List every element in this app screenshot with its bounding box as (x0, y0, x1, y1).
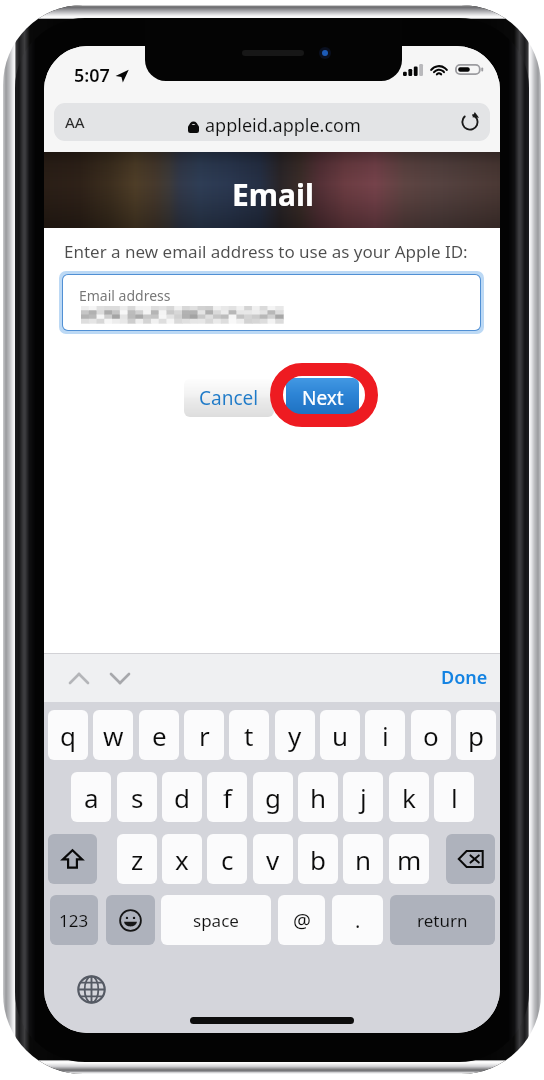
button[interactable]: b (298, 834, 338, 884)
button[interactable]: t (229, 710, 269, 760)
staticText: return (417, 909, 468, 932)
staticText: a (84, 780, 99, 815)
staticText: s (131, 780, 144, 815)
staticText: . (355, 907, 361, 934)
staticText: appleid.apple.com (205, 113, 361, 138)
button[interactable]: k (389, 772, 429, 822)
staticText: p (468, 718, 484, 753)
button[interactable]: n (343, 834, 383, 884)
staticText: c (221, 842, 234, 877)
button[interactable]: q (48, 710, 88, 760)
button[interactable]: AA (54, 103, 490, 141)
staticText: t (244, 718, 254, 753)
button[interactable]: . (332, 895, 383, 945)
staticText: v (266, 842, 280, 877)
staticText: f (223, 780, 232, 815)
staticText: Cancel (199, 385, 259, 411)
staticText: i (382, 718, 389, 753)
staticText: l (451, 780, 458, 815)
button[interactable]: p (456, 710, 496, 760)
button[interactable]: r (184, 710, 224, 760)
staticText: o (423, 718, 439, 753)
button[interactable]: Previous field (64, 663, 94, 693)
button[interactable]: y (275, 710, 315, 760)
button[interactable]: h (298, 772, 338, 822)
staticText: x (175, 842, 189, 877)
staticText: Done (441, 665, 488, 690)
button[interactable]: Reload page (458, 110, 482, 134)
button[interactable]: Email address (63, 275, 480, 330)
staticText: Email (232, 174, 314, 215)
button[interactable]: space (161, 895, 271, 945)
staticText: 5:07 (74, 63, 110, 88)
button[interactable]: l (434, 772, 474, 822)
button[interactable]: w (93, 710, 133, 760)
button[interactable]: Done (441, 665, 488, 690)
button[interactable]: x (162, 834, 202, 884)
button[interactable]: Delete (446, 834, 495, 884)
staticText: n (355, 842, 372, 877)
staticText: 123 (59, 909, 89, 932)
staticText: u (332, 718, 349, 753)
staticText: w (103, 718, 124, 753)
staticText: Email address (79, 286, 171, 305)
staticText: b (310, 842, 326, 877)
button[interactable]: Cancel (184, 379, 274, 417)
button[interactable]: m (389, 834, 429, 884)
button[interactable]: z (117, 834, 157, 884)
button[interactable]: g (253, 772, 293, 822)
staticText: z (131, 842, 144, 877)
staticText: r (199, 718, 210, 753)
staticText: y (288, 718, 302, 753)
button[interactable]: return (390, 895, 495, 945)
staticText: g (265, 780, 281, 815)
staticText: @ (293, 907, 311, 934)
button[interactable]: Next (286, 378, 359, 417)
button[interactable]: a (71, 772, 111, 822)
button[interactable]: c (207, 834, 247, 884)
button[interactable]: Emoji keyboard (106, 895, 155, 945)
staticText: Enter a new email address to use as your… (64, 240, 468, 263)
staticText: j (360, 780, 367, 815)
button[interactable]: i (365, 710, 405, 760)
button[interactable]: u (320, 710, 360, 760)
staticText: h (310, 780, 327, 815)
button[interactable]: e (139, 710, 179, 760)
button[interactable]: f (207, 772, 247, 822)
button[interactable]: Shift (48, 834, 97, 884)
button[interactable]: j (343, 772, 383, 822)
staticText: m (397, 842, 422, 877)
button[interactable]: s (117, 772, 157, 822)
button[interactable]: 123 (50, 895, 98, 945)
button[interactable]: @ (278, 895, 325, 945)
staticText: q (60, 718, 76, 753)
button[interactable]: Change keyboard (74, 972, 108, 1006)
staticText: AA (65, 112, 85, 132)
button[interactable]: d (162, 772, 202, 822)
button[interactable]: Next field (105, 663, 135, 693)
staticText: d (174, 780, 190, 815)
staticText: space (193, 909, 239, 932)
staticText: Next (302, 385, 344, 411)
button[interactable]: o (411, 710, 451, 760)
staticText: k (402, 780, 416, 815)
button[interactable]: v (253, 834, 293, 884)
staticText: e (152, 718, 167, 753)
